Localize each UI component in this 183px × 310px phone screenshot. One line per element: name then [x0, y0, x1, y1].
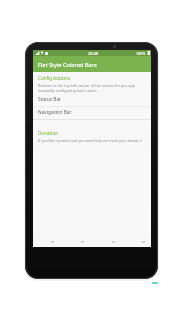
button[interactable]: If you like my work and you want help me…	[33, 137, 151, 146]
staticText: Donation	[38, 130, 59, 136]
button[interactable]: Flat Style Colored Bars	[33, 56, 151, 72]
staticText: 100%	[136, 51, 146, 56]
staticText: manually configuring bars colors	[38, 88, 97, 93]
staticText: Flat Style Colored Bars	[38, 61, 97, 69]
staticText: Status Bar	[38, 96, 62, 103]
staticText: Navigation Bar	[38, 109, 72, 116]
button[interactable]: Navigation Bar	[33, 106, 151, 119]
staticText: If you like my work and you want help me…	[38, 138, 143, 143]
staticText: Buttons in the top left corner of the sc…	[38, 83, 136, 88]
button[interactable]: Status Bar	[33, 93, 151, 106]
staticText: 20:08	[88, 51, 99, 56]
staticText: Config buttons	[38, 75, 71, 81]
